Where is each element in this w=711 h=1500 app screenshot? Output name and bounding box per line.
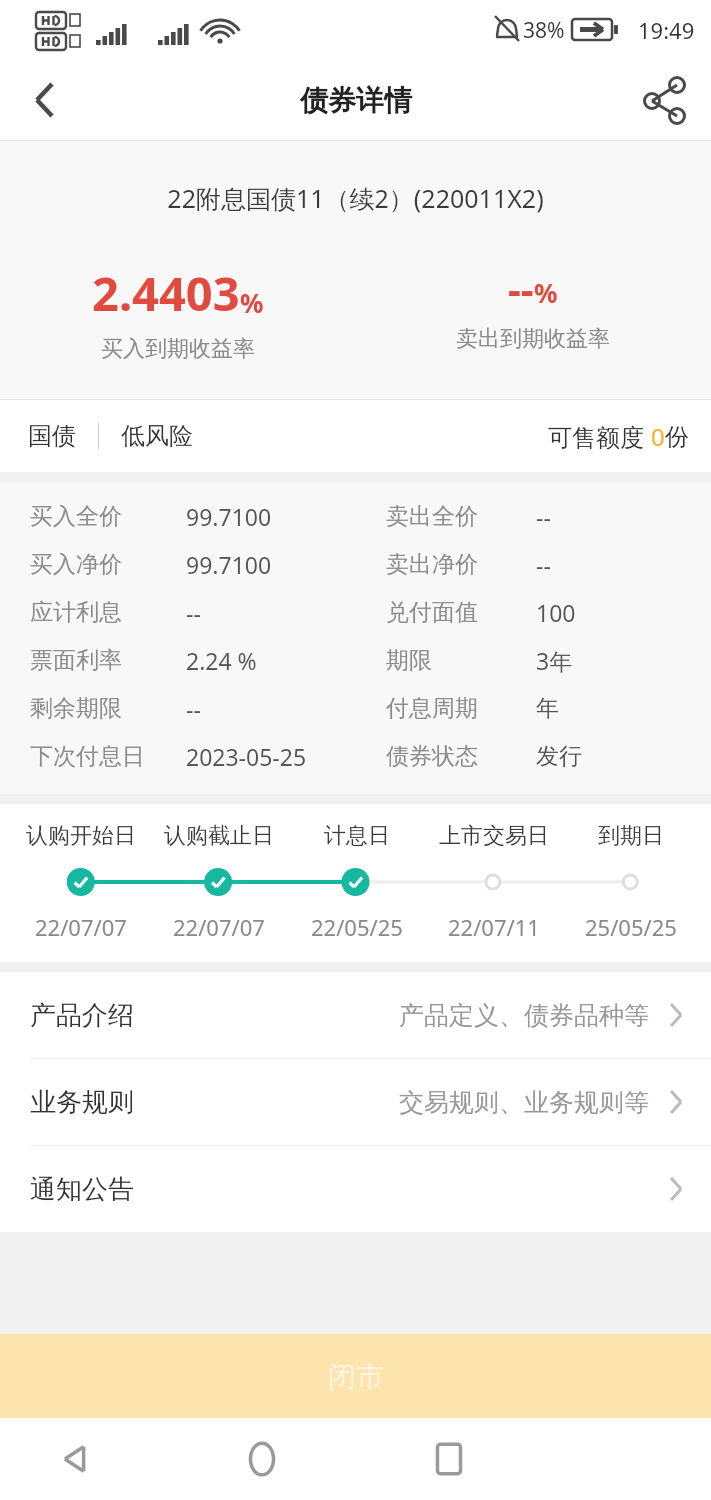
- staticText: 买入全价: [30, 502, 122, 531]
- button[interactable]: 通知公告: [0, 1146, 711, 1232]
- staticText: --: [186, 693, 201, 724]
- staticText: 0: [651, 420, 665, 453]
- staticText: 22附息国债11（续2）(220011X2): [0, 181, 711, 215]
- staticText: 剩余期限: [30, 694, 122, 723]
- staticText: 2.24 %: [186, 645, 257, 676]
- staticText: 份: [665, 422, 689, 452]
- button[interactable]: 闭市: [0, 1334, 711, 1418]
- staticText: 债券详情: [300, 83, 412, 118]
- button[interactable]: Recents: [414, 1424, 484, 1494]
- button[interactable]: Back: [40, 1424, 110, 1494]
- staticText: 低风险: [121, 421, 193, 451]
- button[interactable]: Home: [227, 1424, 297, 1494]
- staticText: 到期日: [598, 822, 664, 850]
- staticText: 22/07/07: [173, 912, 265, 942]
- staticText: 年: [536, 694, 559, 723]
- staticText: 22/05/25: [311, 912, 403, 942]
- staticText: 上市交易日: [439, 822, 549, 850]
- staticText: 通知公告: [30, 1173, 134, 1206]
- button[interactable]: Share: [635, 70, 695, 130]
- staticText: 22/07/11: [448, 912, 540, 942]
- staticText: 交易规则、业务规则等: [399, 1087, 649, 1118]
- staticText: --: [536, 549, 551, 580]
- staticText: 票面利率: [30, 646, 122, 675]
- staticText: %: [534, 275, 558, 310]
- button[interactable]: 产品介绍: [0, 972, 711, 1058]
- staticText: 期限: [386, 646, 432, 675]
- staticText: 兑付面值: [386, 598, 478, 627]
- staticText: 99.7100: [186, 501, 272, 532]
- staticText: 2023-05-25: [186, 741, 307, 772]
- staticText: 债券状态: [386, 742, 478, 771]
- staticText: --: [508, 261, 534, 315]
- staticText: 3年: [536, 645, 573, 676]
- staticText: --: [536, 501, 551, 532]
- staticText: 买入净价: [30, 550, 122, 579]
- staticText: 19:49: [638, 15, 695, 45]
- button[interactable]: 业务规则: [0, 1059, 711, 1145]
- staticText: 产品介绍: [30, 999, 134, 1032]
- staticText: 卖出净价: [386, 550, 478, 579]
- staticText: 认购截止日: [164, 822, 274, 850]
- staticText: 可售额度: [548, 420, 651, 453]
- button[interactable]: Back: [14, 70, 74, 130]
- staticText: 25/05/25: [585, 912, 677, 942]
- staticText: 卖出到期收益率: [456, 325, 610, 353]
- staticText: 38%: [523, 16, 565, 45]
- staticText: 业务规则: [30, 1086, 134, 1119]
- staticText: --: [186, 597, 201, 628]
- staticText: %: [240, 285, 264, 320]
- staticText: 计息日: [324, 822, 390, 850]
- staticText: 国债: [28, 421, 76, 451]
- staticText: 发行: [536, 742, 582, 771]
- staticText: 应计利息: [30, 598, 122, 627]
- staticText: 22/07/07: [35, 912, 127, 942]
- staticText: 闭市: [328, 1359, 384, 1394]
- staticText: 下次付息日: [30, 742, 145, 771]
- staticText: 买入到期收益率: [101, 335, 255, 363]
- staticText: 认购开始日: [26, 822, 136, 850]
- staticText: 付息周期: [386, 694, 478, 723]
- staticText: 产品定义、债券品种等: [399, 1000, 649, 1031]
- staticText: 卖出全价: [386, 502, 478, 531]
- staticText: 100: [536, 597, 576, 628]
- staticText: 2.4403: [92, 261, 240, 325]
- staticText: 99.7100: [186, 549, 272, 580]
